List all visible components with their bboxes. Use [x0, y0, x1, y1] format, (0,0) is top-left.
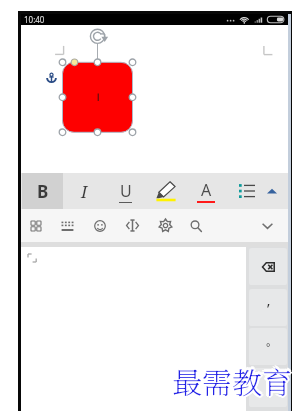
- button[interactable]: Emoji: [85, 209, 115, 242]
- staticText: 10:40: [24, 14, 45, 25]
- button[interactable]: Font color: [191, 173, 221, 209]
- button[interactable]: Backspace: [249, 248, 287, 285]
- button[interactable]: Hide keyboard: [252, 209, 282, 242]
- button[interactable]: Bullet list: [232, 173, 262, 209]
- staticText: U: [120, 180, 132, 202]
- button[interactable]: Settings: [150, 209, 180, 242]
- staticText: I: [81, 180, 88, 203]
- button[interactable]: Period: [249, 328, 287, 365]
- button[interactable]: Enter: [249, 368, 287, 407]
- staticText: 最需教育: [169, 359, 289, 402]
- staticText: 最需教育: [172, 361, 292, 404]
- button[interactable]: Underline: [110, 173, 140, 209]
- button[interactable]: Keyboard: [52, 209, 82, 242]
- button[interactable]: Highlight: [151, 173, 181, 209]
- button[interactable]: Apps: [21, 209, 51, 242]
- staticText: ’: [267, 298, 270, 318]
- staticText: °: [266, 340, 271, 354]
- staticText: 最需教育: [170, 360, 290, 403]
- staticText: 最需教育: [172, 359, 292, 402]
- staticText: B: [37, 180, 49, 203]
- button[interactable]: Italic: [69, 173, 99, 209]
- button[interactable]: Search: [181, 209, 211, 242]
- button[interactable]: Apostrophe: [249, 289, 287, 326]
- button[interactable]: Insert field: [117, 209, 147, 242]
- staticText: 最需教育: [172, 356, 292, 399]
- button[interactable]: Collapse toolbar: [257, 173, 287, 209]
- staticText: 最需教育: [170, 357, 290, 400]
- staticText: A: [201, 179, 212, 201]
- staticText: 最需教育: [174, 359, 294, 402]
- staticText: 最需教育: [173, 360, 293, 403]
- button[interactable]: Bold: [22, 173, 63, 209]
- staticText: 最需教育: [173, 357, 293, 400]
